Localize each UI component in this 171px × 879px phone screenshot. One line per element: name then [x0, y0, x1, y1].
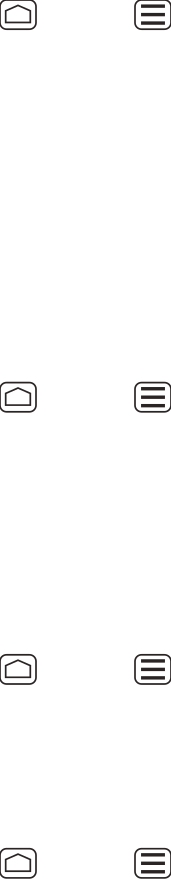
- button[interactable]: Home: [0, 849, 36, 878]
- button[interactable]: Menu: [135, 0, 171, 29]
- button[interactable]: Menu: [135, 655, 171, 684]
- button[interactable]: Menu: [135, 849, 171, 878]
- button[interactable]: Menu: [135, 383, 171, 412]
- button[interactable]: Home: [0, 655, 36, 684]
- button[interactable]: Home: [0, 383, 36, 412]
- button[interactable]: Home: [0, 0, 36, 29]
